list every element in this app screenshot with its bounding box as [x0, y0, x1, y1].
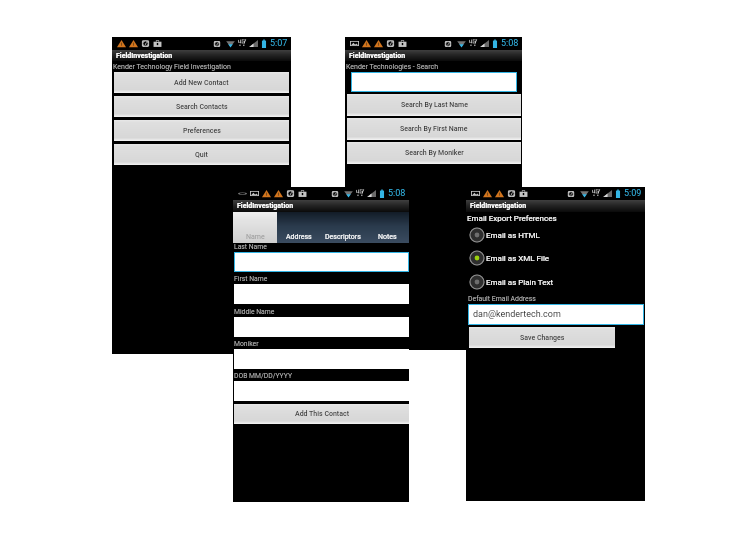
staticText: Search By Last Name — [401, 101, 468, 109]
staticText: Descriptors — [325, 233, 361, 241]
staticText: Save Changes — [520, 334, 565, 342]
staticText: 5:09 — [624, 188, 642, 199]
button[interactable]: Notes — [365, 212, 409, 243]
staticText: Search By First Name — [400, 125, 468, 133]
button[interactable]: Address — [277, 212, 321, 243]
staticText: Email as Plain Text — [486, 278, 554, 287]
button[interactable]: Search Contacts — [114, 96, 289, 117]
staticText: Middle Name — [234, 308, 275, 316]
staticText: Add New Contact — [174, 79, 229, 87]
staticText: Email as HTML — [486, 231, 540, 240]
staticText: Last Name — [234, 243, 267, 251]
staticText: Search Contacts — [176, 103, 228, 111]
staticText: 5:07 — [270, 38, 288, 49]
button[interactable] — [234, 252, 409, 272]
staticText: 5:08 — [501, 38, 519, 49]
button[interactable]: Email as XML File — [469, 250, 550, 266]
staticText: FieldInvestigation — [470, 202, 527, 210]
staticText: 5:08 — [388, 188, 406, 199]
button[interactable]: Add New Contact — [114, 72, 289, 93]
staticText: Notes — [378, 233, 397, 241]
staticText: FieldInvestigation — [237, 202, 294, 210]
button[interactable]: Email as Plain Text — [469, 274, 554, 290]
staticText: dan@kendertech.com — [473, 309, 561, 320]
button[interactable]: Add This Contact — [234, 404, 409, 424]
staticText: Add This Contact — [295, 410, 349, 418]
staticText: DOB MM/DD/YYYY — [234, 372, 292, 380]
staticText: Address — [286, 233, 312, 241]
button[interactable]: Preferences — [114, 120, 289, 141]
staticText: Preferences — [183, 127, 221, 135]
button[interactable]: Search By Moniker — [347, 142, 521, 164]
staticText: Kender Technology Field Investigation — [113, 63, 231, 71]
button[interactable]: Email as HTML — [469, 227, 540, 243]
staticText: Moniker — [234, 340, 259, 348]
staticText: FieldInvestigation — [349, 52, 406, 60]
staticText: Email Export Preferences — [467, 214, 557, 223]
button[interactable]: Search By Last Name — [347, 94, 521, 116]
button[interactable]: Descriptors — [321, 212, 365, 243]
button[interactable]: Quit — [114, 144, 289, 165]
button[interactable]: Save Changes — [469, 327, 615, 348]
button[interactable]: dan@kendertech.com — [468, 304, 644, 325]
staticText: FieldInvestigation — [116, 52, 173, 60]
staticText: Name — [246, 233, 265, 241]
staticText: Default Email Address — [468, 295, 536, 303]
button[interactable]: Name — [233, 212, 277, 243]
staticText: Email as XML File — [486, 254, 550, 263]
staticText: First Name — [234, 275, 268, 283]
staticText: Search By Moniker — [405, 149, 464, 157]
staticText: Kender Technologies - Search — [346, 63, 439, 71]
staticText: Quit — [195, 151, 208, 159]
button[interactable] — [351, 72, 517, 92]
button[interactable]: Search By First Name — [347, 118, 521, 140]
